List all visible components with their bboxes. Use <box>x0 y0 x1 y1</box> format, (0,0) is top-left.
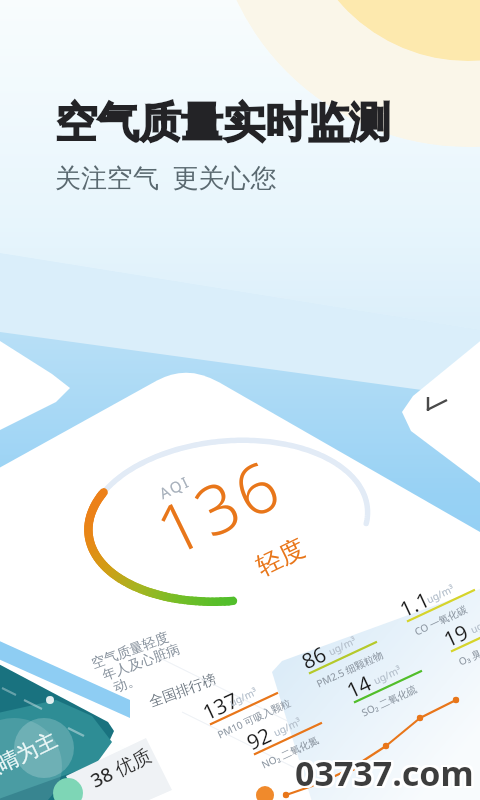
staticText: 空气质量实时监测 <box>55 97 391 150</box>
staticText: 关注空气 更关心您 <box>55 159 277 195</box>
